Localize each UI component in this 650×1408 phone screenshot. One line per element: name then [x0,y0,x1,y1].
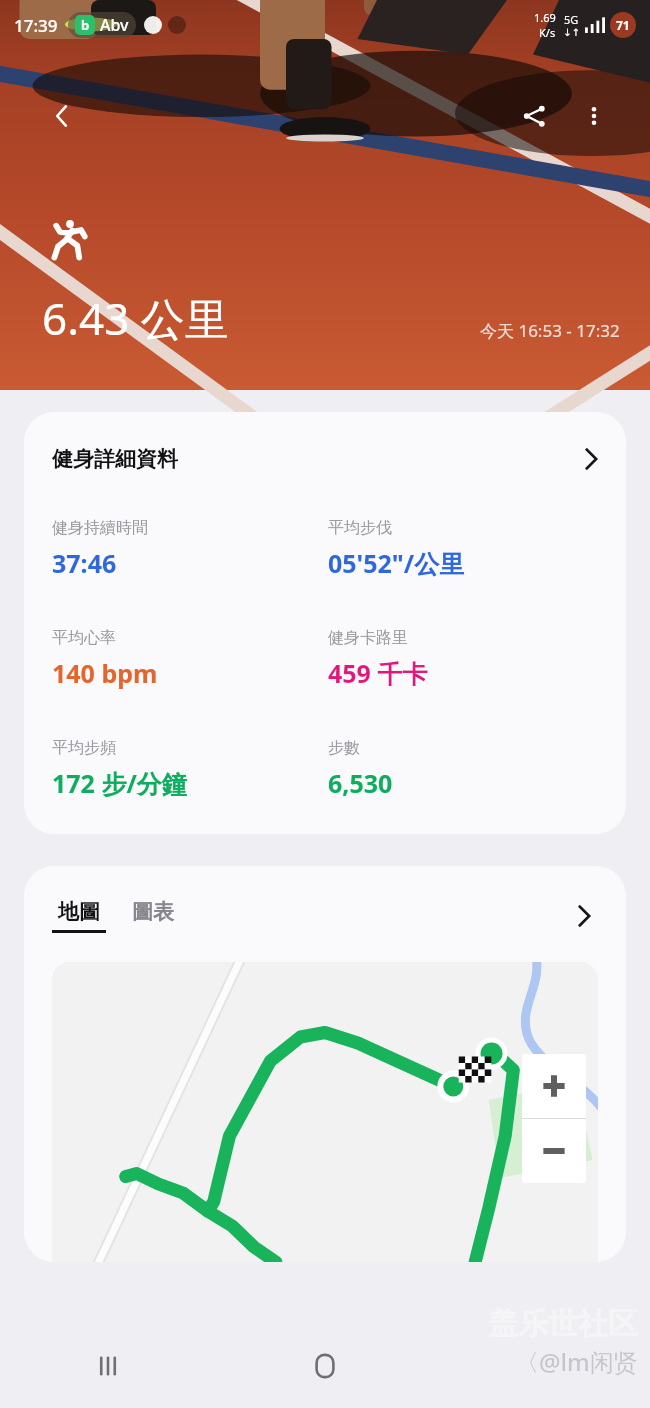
staticText: 健身詳細資料 [52,446,178,472]
staticText: 5G [564,12,579,27]
staticText: 健身卡路里 [328,628,408,648]
staticText: 今天 16:53 - 17:32 [480,319,620,342]
staticText: 地圖 [58,899,100,925]
staticText: K/s [539,25,556,40]
staticText: 6,530 [328,766,393,800]
button[interactable]: 健身詳細資料 [24,412,626,834]
staticText: 平均步伐 [328,518,392,538]
staticText: 172 步/分鐘 [52,766,187,800]
staticText: 71 [616,17,630,33]
button[interactable]: Zoom out [522,1119,586,1183]
button[interactable]: Back [433,1324,650,1408]
button[interactable]: Zoom in [522,1054,586,1118]
staticText: 健身持續時間 [52,518,148,538]
button[interactable]: Recent apps [0,1324,216,1408]
staticText: ↓↑ [563,27,580,39]
button[interactable]: Route map [52,962,598,1262]
staticText: 平均步頻 [52,738,116,758]
button[interactable]: 地圖 [52,899,106,933]
staticText: 17:39 [14,14,58,37]
staticText: 平均心率 [52,628,116,648]
button[interactable]: Share [506,88,562,144]
button[interactable]: Home [216,1324,433,1408]
staticText: 〈@lm闲贤 [515,1345,638,1378]
staticText: 圖表 [132,899,174,925]
button[interactable]: More options [566,88,622,144]
staticText: 37:46 [52,546,117,580]
staticText: 140 bpm [52,656,158,690]
staticText: Abv [100,14,129,36]
staticText: 步數 [328,738,360,758]
button[interactable]: Open map [564,896,604,936]
staticText: b [81,16,90,34]
staticText: 459 千卡 [328,656,428,690]
staticText: 1.69 [534,10,556,25]
button[interactable]: Back [34,88,90,144]
staticText: 6.43 公里 [42,288,229,348]
button[interactable]: 圖表 [132,899,174,933]
staticText: 05'52"/公里 [328,546,465,580]
